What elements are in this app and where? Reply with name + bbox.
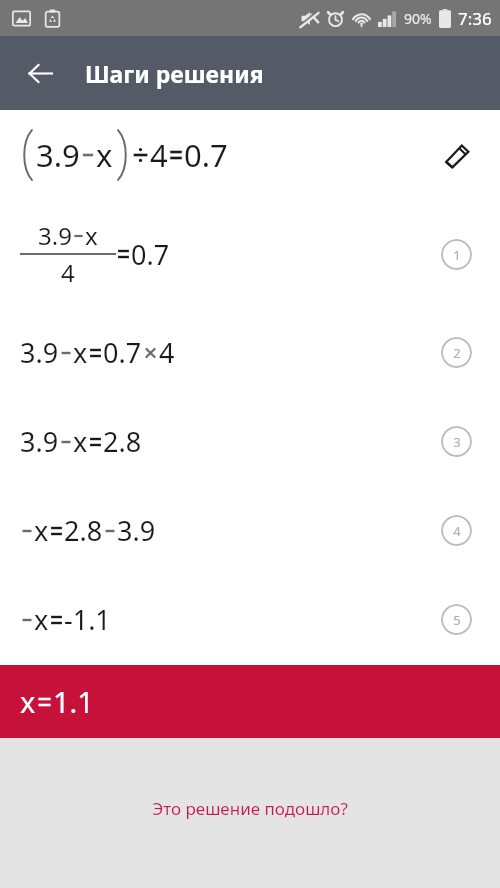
button[interactable]: x xyxy=(0,486,500,575)
staticText: 90% xyxy=(404,9,432,28)
staticText: 1 xyxy=(453,246,461,264)
staticText: 0.7 xyxy=(103,334,142,371)
staticText: 2.8 xyxy=(64,512,103,549)
button[interactable]: 3.9 xyxy=(0,200,500,308)
staticText: 4 xyxy=(61,256,75,289)
staticText: x xyxy=(73,423,88,460)
staticText: 3.9 xyxy=(20,423,59,460)
staticText: x xyxy=(34,512,49,549)
staticText: 1.1 xyxy=(53,682,94,721)
staticText: 4 xyxy=(453,522,461,540)
staticText: 3.9 xyxy=(20,334,59,371)
staticText: Это решение подошло? xyxy=(152,797,348,820)
button[interactable]: 2 xyxy=(441,337,472,368)
staticText: -1.1 xyxy=(64,601,111,638)
staticText: 4 xyxy=(159,334,175,371)
button[interactable]: x xyxy=(0,665,500,738)
staticText: x xyxy=(73,334,88,371)
staticText: 3.9 xyxy=(38,219,72,252)
staticText: 0.7 xyxy=(184,134,228,176)
button[interactable]: 3 xyxy=(441,426,472,457)
staticText: 4 xyxy=(150,134,168,176)
staticText: 3.9 xyxy=(117,512,156,549)
staticText: 2 xyxy=(453,344,461,362)
staticText: 3.9 xyxy=(36,134,80,176)
button[interactable]: Back xyxy=(18,51,62,95)
button[interactable]: 4 xyxy=(441,515,472,546)
staticText: 2.8 xyxy=(103,423,142,460)
staticText: x xyxy=(85,219,98,252)
button[interactable]: Edit equation xyxy=(434,132,480,178)
staticText: x xyxy=(20,682,36,721)
button[interactable]: 3.9 xyxy=(0,397,500,486)
staticText: 3 xyxy=(453,433,461,451)
staticText: x xyxy=(34,601,49,638)
staticText: 5 xyxy=(453,611,461,629)
button[interactable]: 1 xyxy=(441,239,472,270)
staticText: 0.7 xyxy=(131,236,170,273)
button[interactable]: x xyxy=(0,575,500,664)
staticText: 7:36 xyxy=(458,7,492,30)
button[interactable]: 5 xyxy=(441,604,472,635)
staticText: Шаги решения xyxy=(85,58,264,89)
button[interactable]: 3.9 xyxy=(0,308,500,397)
button[interactable]: Это решение подошло? xyxy=(152,797,348,820)
staticText: x xyxy=(96,134,113,176)
